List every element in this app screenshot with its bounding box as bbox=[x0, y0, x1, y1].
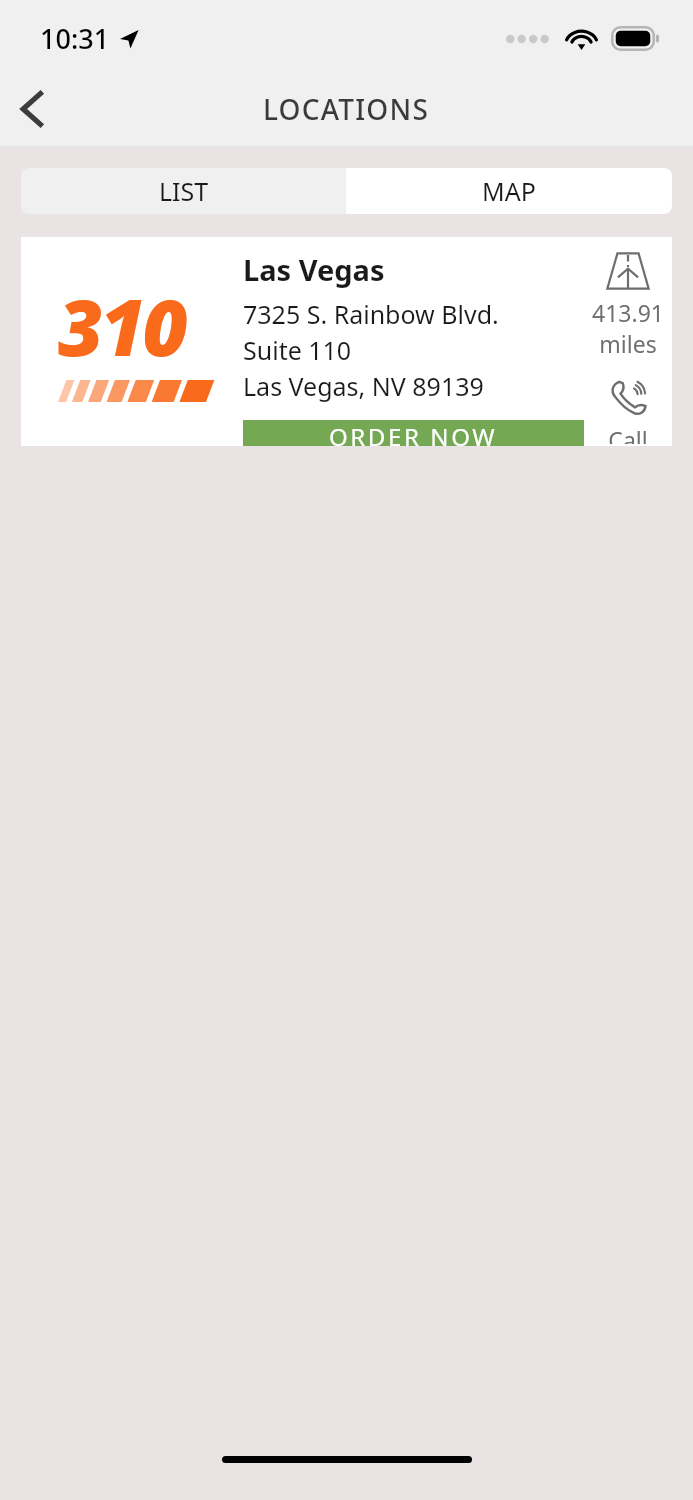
staticText: MAP bbox=[482, 174, 536, 208]
staticText: Las Vegas bbox=[243, 250, 385, 289]
staticText: 10:31 bbox=[40, 20, 110, 57]
staticText: LOCATIONS bbox=[263, 90, 430, 128]
button[interactable]: MAP bbox=[346, 168, 672, 214]
staticText: 310 bbox=[58, 273, 185, 379]
staticText: Las Vegas, NV 89139 bbox=[243, 369, 484, 403]
button[interactable]: LIST bbox=[21, 168, 346, 214]
staticText: 7325 S. Rainbow Blvd. bbox=[243, 297, 499, 331]
staticText: ORDER NOW bbox=[329, 420, 498, 446]
button[interactable]: 310 bbox=[21, 237, 672, 446]
staticText: Suite 110 bbox=[243, 333, 352, 367]
staticText: miles bbox=[599, 328, 657, 359]
staticText: Call bbox=[608, 424, 648, 444]
staticText: LIST bbox=[159, 174, 209, 208]
staticText: 413.91 bbox=[592, 297, 664, 328]
button[interactable]: Call bbox=[602, 375, 654, 446]
button[interactable]: Directions bbox=[588, 249, 668, 361]
button[interactable]: ORDER NOW bbox=[243, 420, 584, 446]
button[interactable]: Back bbox=[0, 76, 66, 142]
